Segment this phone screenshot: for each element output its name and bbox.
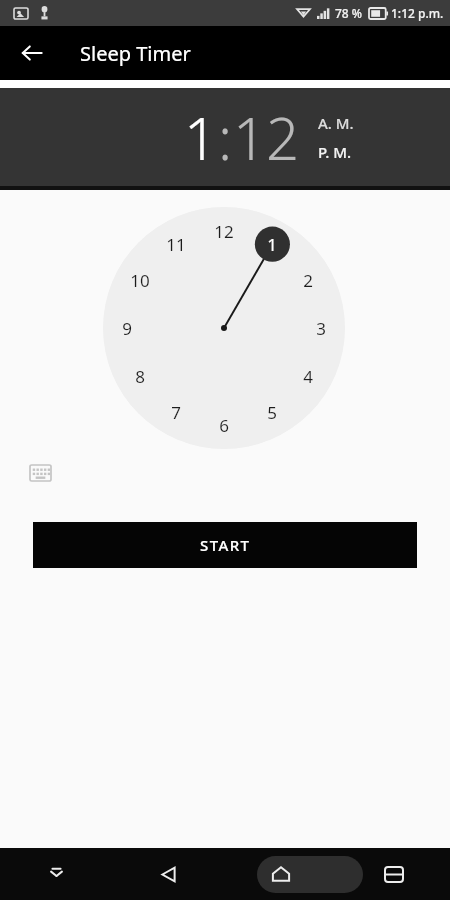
button[interactable]: 8 (123, 359, 157, 393)
button[interactable]: Back (112, 848, 224, 900)
button[interactable]: 6 (207, 408, 241, 442)
button[interactable]: 12 (233, 98, 300, 177)
staticText: 3 (316, 317, 326, 340)
staticText: 2 (303, 269, 313, 292)
staticText: 4 (303, 365, 313, 388)
button[interactable]: 9 (110, 311, 144, 345)
button[interactable]: 11 (159, 227, 193, 261)
staticText: : (218, 98, 233, 177)
staticText: 7 (171, 401, 181, 424)
staticText: A. M. (318, 113, 354, 133)
button[interactable]: START (33, 522, 417, 568)
staticText: 1:12 p.m. (391, 5, 444, 21)
button[interactable]: Back (10, 31, 54, 75)
button[interactable]: A. M. (318, 113, 354, 133)
button[interactable]: 10 (123, 263, 157, 297)
staticText: 6 (219, 414, 229, 437)
staticText: 1 (184, 98, 218, 177)
button[interactable]: Switch to text input (24, 459, 56, 487)
staticText: Sleep Timer (80, 40, 191, 67)
button[interactable]: 3 (304, 311, 338, 345)
staticText: 12 (214, 220, 234, 243)
staticText: START (200, 535, 251, 555)
staticText: 10 (130, 269, 150, 292)
staticText: 8 (135, 365, 145, 388)
button[interactable]: 1 (103, 207, 345, 449)
button[interactable]: 1 (255, 227, 289, 261)
button[interactable]: 12 (207, 214, 241, 248)
button[interactable]: 4 (291, 359, 325, 393)
button[interactable]: 2 (291, 263, 325, 297)
staticText: 9 (122, 317, 132, 340)
staticText: 1 (267, 233, 277, 256)
staticText: 11 (166, 233, 186, 256)
button[interactable]: 5 (255, 395, 289, 429)
button[interactable]: 1 (184, 98, 218, 177)
staticText: 78 % (335, 5, 363, 21)
staticText: P. M. (318, 142, 352, 162)
staticText: 5 (267, 401, 277, 424)
button[interactable]: Recent apps (337, 848, 450, 900)
staticText: 12 (233, 98, 300, 177)
button[interactable]: P. M. (318, 142, 352, 162)
button[interactable]: Home (224, 848, 337, 900)
button[interactable]: 7 (159, 395, 193, 429)
button[interactable]: Hide keyboard (0, 848, 112, 900)
